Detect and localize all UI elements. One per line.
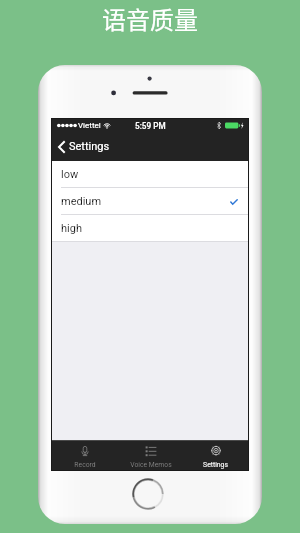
- staticText: Viettel: [78, 121, 101, 130]
- button[interactable]: low: [52, 161, 248, 187]
- button[interactable]: Record: [52, 441, 118, 470]
- staticText: low: [61, 168, 79, 181]
- staticText: 语音质量: [102, 1, 198, 36]
- button[interactable]: medium: [52, 188, 248, 214]
- button[interactable]: high: [52, 215, 248, 241]
- staticText: high: [61, 222, 82, 235]
- staticText: Settings: [203, 461, 228, 469]
- button[interactable]: Settings: [183, 441, 248, 470]
- staticText: Voice Memos: [130, 461, 172, 469]
- button[interactable]: Back to Settings: [52, 132, 248, 161]
- staticText: 5:59 PM: [135, 121, 166, 131]
- button[interactable]: Voice Memos: [118, 441, 183, 470]
- button[interactable]: Home: [132, 478, 164, 510]
- staticText: medium: [61, 195, 102, 208]
- staticText: Settings: [69, 140, 110, 153]
- staticText: Record: [74, 461, 96, 469]
